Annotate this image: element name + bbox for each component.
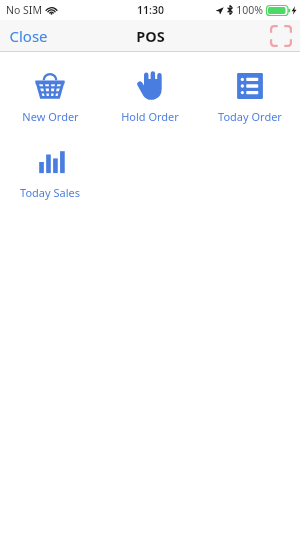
button[interactable]: Scan barcode — [268, 23, 294, 49]
staticText: POS — [136, 26, 165, 46]
staticText: Hold Order — [121, 109, 179, 124]
button[interactable]: Close — [0, 21, 57, 51]
staticText: Close — [9, 26, 48, 46]
button[interactable]: Today Sales — [0, 141, 100, 206]
button[interactable]: New Order — [0, 65, 100, 130]
staticText: 100% — [236, 3, 263, 17]
staticText: New Order — [22, 109, 79, 124]
staticText: 11:30 — [137, 3, 164, 17]
staticText: Today Sales — [20, 185, 80, 200]
staticText: No SIM — [6, 3, 42, 17]
button[interactable]: Today Order — [200, 65, 300, 130]
staticText: Today Order — [218, 109, 282, 124]
button[interactable]: Hold Order — [100, 65, 200, 130]
